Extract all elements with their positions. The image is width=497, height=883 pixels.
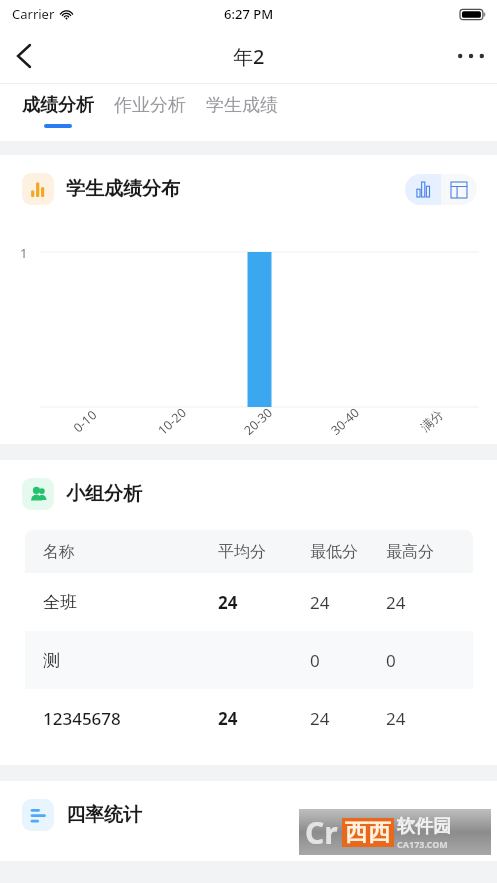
staticText: 12345678 xyxy=(43,707,218,730)
staticText: 年2 xyxy=(233,43,265,70)
button[interactable]: Back xyxy=(0,32,48,80)
staticText: 24 xyxy=(218,707,310,730)
staticText: 0 xyxy=(310,649,386,672)
staticText: 学生成绩 xyxy=(206,94,278,117)
staticText: 20-30 xyxy=(233,398,283,445)
button[interactable]: More options xyxy=(445,30,497,82)
staticText: 10-20 xyxy=(147,398,197,445)
staticText: 小组分析 xyxy=(66,482,142,506)
staticText: 四率统计 xyxy=(66,803,142,827)
button[interactable]: 全班 xyxy=(25,573,473,631)
button[interactable]: 学生成绩 xyxy=(200,94,284,128)
staticText: CA173.COM xyxy=(397,838,448,850)
staticText: 作业分析 xyxy=(114,94,186,117)
staticText: 30-40 xyxy=(320,398,370,445)
staticText: 0 xyxy=(386,649,396,672)
staticText: 最高分 xyxy=(386,542,434,562)
staticText: 成绩分析 xyxy=(22,94,94,117)
staticText: 全班 xyxy=(43,592,218,613)
staticText: 24 xyxy=(386,591,406,614)
button[interactable]: 成绩分析 xyxy=(16,94,100,128)
button[interactable]: 测 xyxy=(25,631,473,689)
button[interactable]: 12345678 xyxy=(25,689,473,747)
staticText: 24 xyxy=(386,707,406,730)
staticText: 最低分 xyxy=(310,542,386,562)
button[interactable]: 作业分析 xyxy=(108,94,192,128)
staticText: 满分 xyxy=(407,398,457,444)
staticText: 软件园 xyxy=(397,815,451,838)
staticText: 平均分 xyxy=(218,542,310,562)
staticText: 测 xyxy=(43,650,218,671)
staticText: 名称 xyxy=(43,542,218,562)
staticText: 24 xyxy=(310,707,386,730)
staticText: 1 xyxy=(20,244,28,262)
staticText: Cr xyxy=(305,812,338,853)
staticText: 学生成绩分布 xyxy=(66,177,180,201)
button[interactable]: Table view xyxy=(441,174,477,205)
staticText: Carrier xyxy=(12,5,55,23)
button[interactable]: Chart view xyxy=(405,174,441,205)
staticText: 24 xyxy=(310,591,386,614)
staticText: 0-10 xyxy=(60,398,110,445)
staticText: 西西 xyxy=(345,818,391,847)
staticText: 24 xyxy=(218,591,310,614)
staticText: 6:27 PM xyxy=(224,5,274,23)
